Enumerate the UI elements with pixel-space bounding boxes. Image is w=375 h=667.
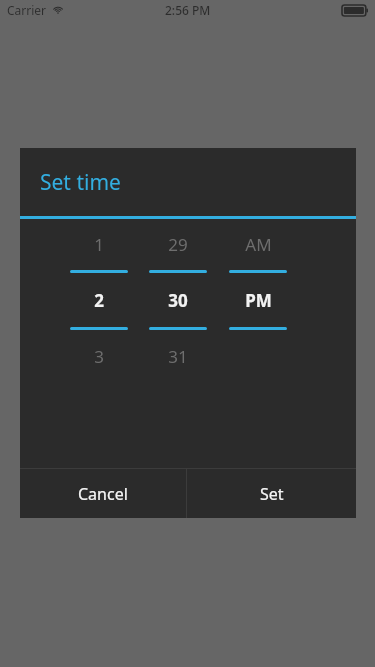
button[interactable]: AM: [218, 219, 298, 468]
staticText: 1: [94, 233, 104, 256]
staticText: Carrier: [7, 2, 47, 18]
staticText: Set: [260, 483, 284, 505]
other: Wi-Fi: [52, 4, 64, 16]
button[interactable]: 1: [59, 219, 138, 468]
button[interactable]: 29: [138, 219, 218, 468]
button[interactable]: Cancel: [20, 469, 186, 518]
staticText: 29: [168, 233, 188, 256]
staticText: 31: [168, 345, 188, 368]
staticText: 3: [94, 345, 104, 368]
staticText: PM: [245, 289, 272, 312]
staticText: Set time: [40, 168, 121, 197]
staticText: 30: [168, 289, 188, 312]
other: Battery full: [342, 5, 368, 16]
staticText: 2: [94, 289, 104, 312]
staticText: 2:56 PM: [165, 2, 211, 18]
button[interactable]: Set: [187, 469, 356, 518]
staticText: Cancel: [78, 483, 128, 505]
staticText: AM: [245, 233, 272, 256]
